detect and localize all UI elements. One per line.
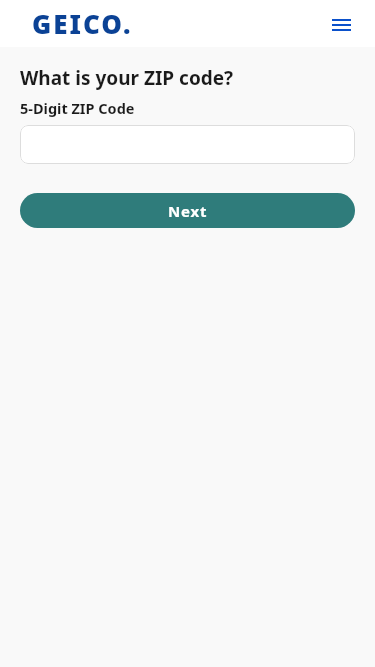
staticText: What is your ZIP code? [20,65,234,91]
button[interactable] [324,8,358,42]
staticText: 5-Digit ZIP Code [20,98,135,118]
staticText: Next [168,201,208,221]
button[interactable]: Next [20,193,355,228]
staticText: GEICO. [32,6,133,41]
button[interactable] [20,125,355,164]
